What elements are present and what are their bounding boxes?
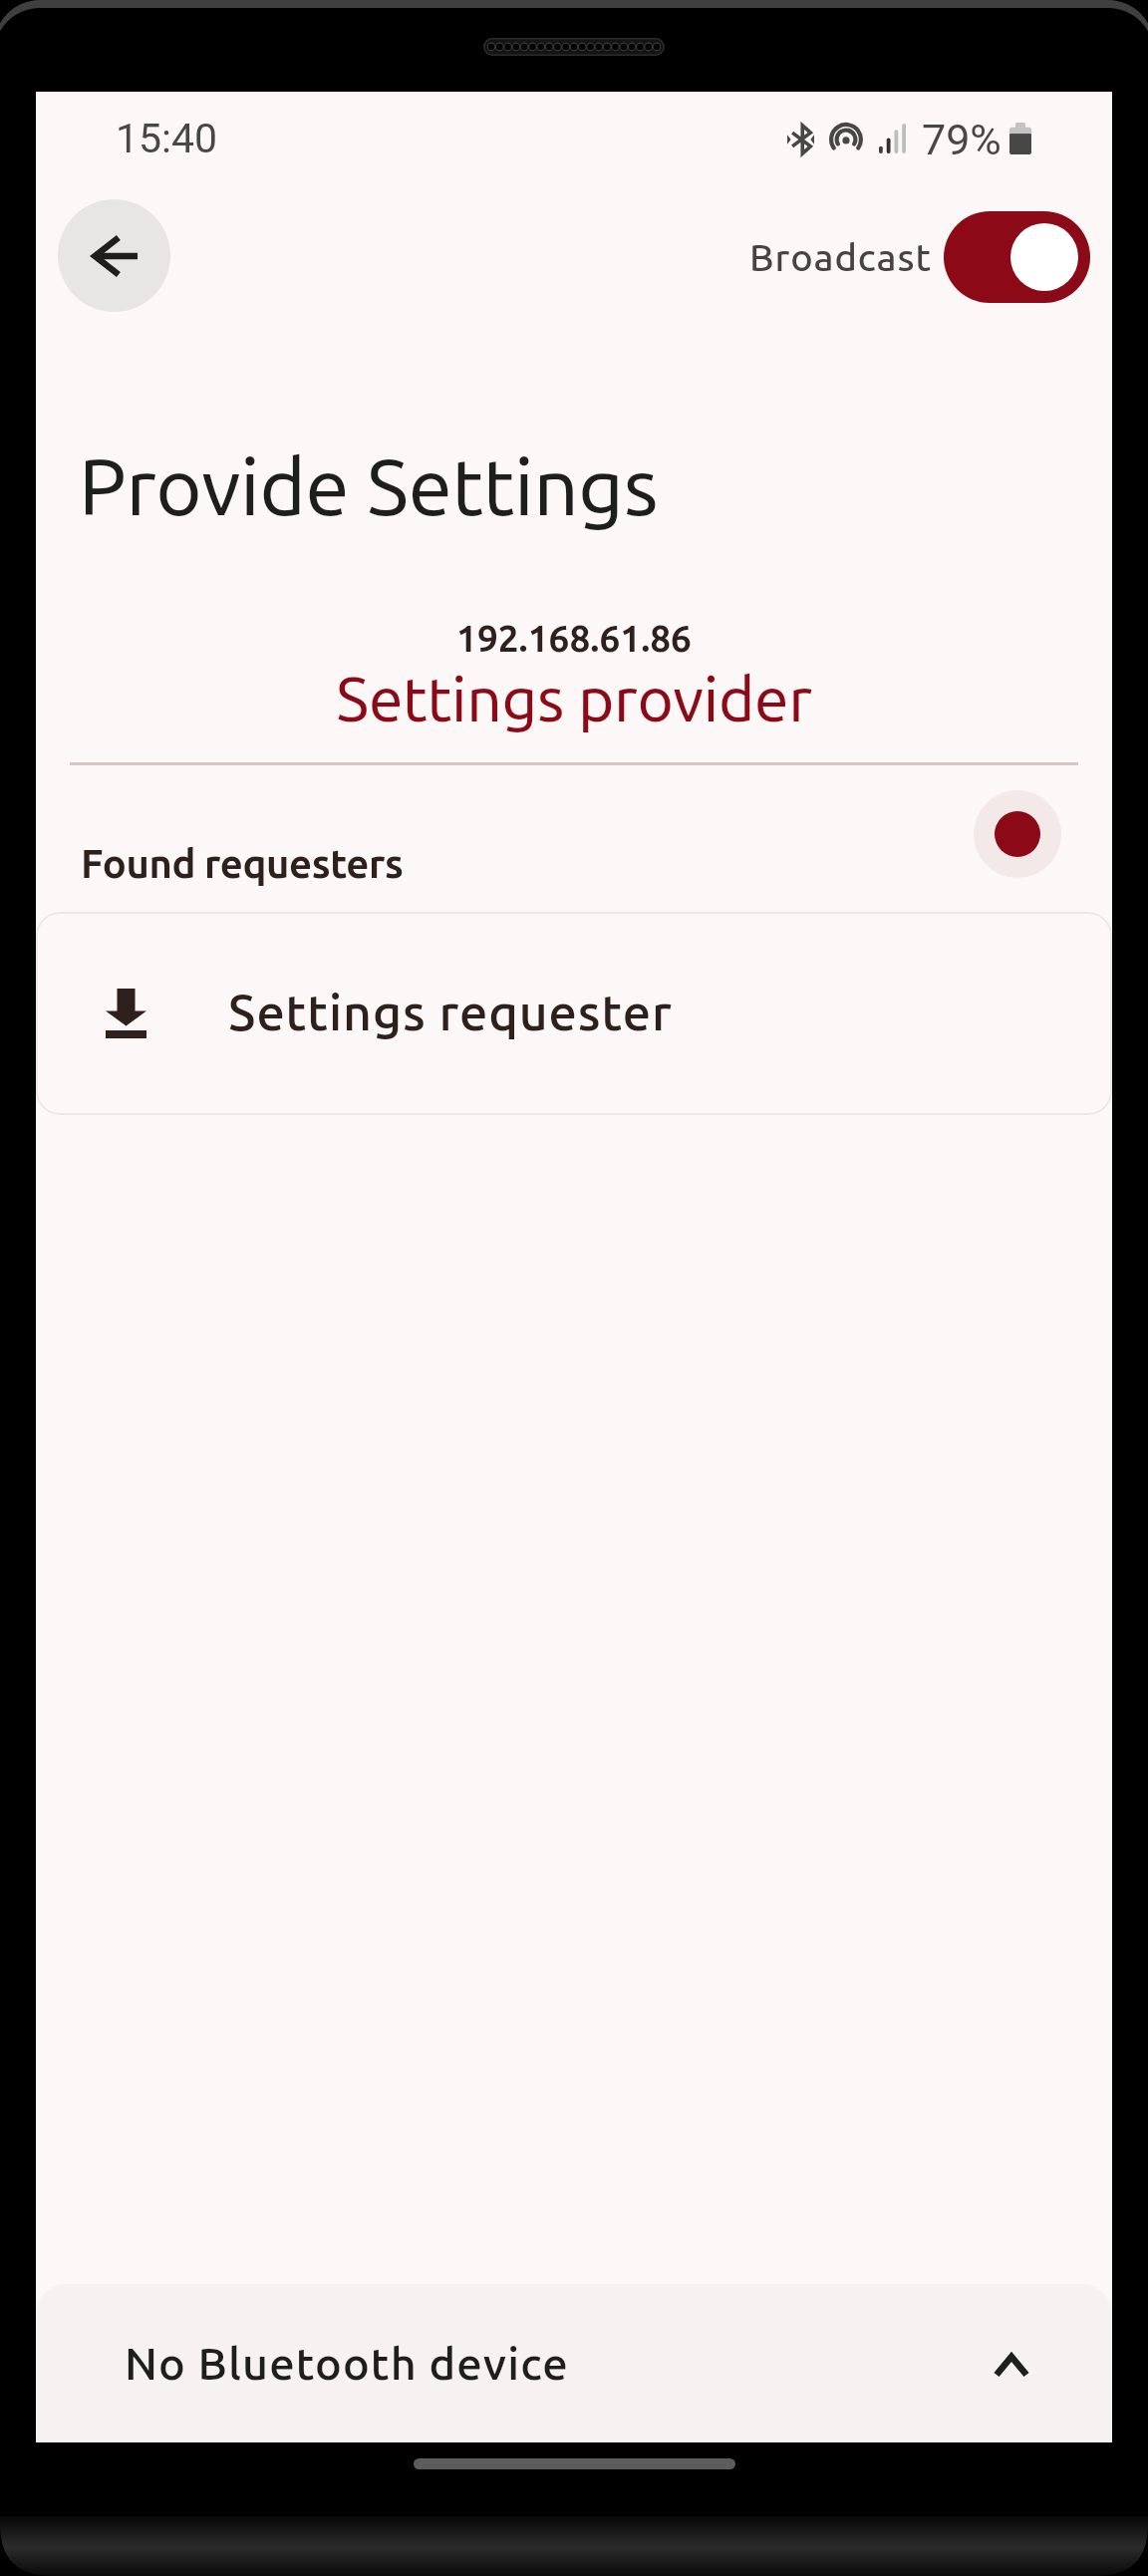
staticText: Found requesters	[81, 841, 404, 886]
button[interactable]: Back	[58, 199, 170, 312]
button[interactable]: Settings requester	[36, 912, 1112, 1115]
staticText: No Bluetooth device	[125, 2338, 569, 2388]
button[interactable]: Broadcasting	[974, 790, 1061, 878]
button[interactable]: No Bluetooth device	[36, 2284, 1112, 2442]
staticText: Settings provider	[36, 664, 1112, 733]
staticText: 192.168.61.86	[36, 618, 1112, 659]
staticText: 15:40	[116, 115, 218, 162]
staticText: 79%	[922, 115, 1002, 164]
button[interactable]: Broadcast	[733, 211, 1128, 303]
staticText: Broadcast	[749, 236, 932, 279]
staticText: Provide Settings	[79, 441, 659, 530]
staticText: Settings requester	[228, 984, 673, 1039]
